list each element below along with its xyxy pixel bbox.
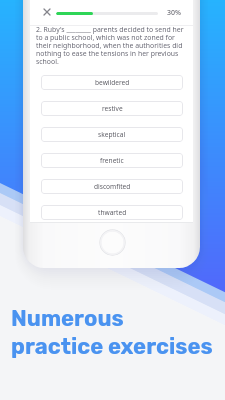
staticText: frenetic	[100, 156, 124, 165]
button[interactable]: bewildered	[41, 75, 183, 90]
staticText: bewildered	[95, 78, 130, 87]
button[interactable]: frenetic	[41, 153, 183, 168]
button[interactable]: Close	[38, 3, 55, 20]
staticText: restive	[102, 104, 123, 113]
staticText: 30%	[167, 8, 181, 18]
staticText: Numerous	[11, 305, 124, 331]
staticText: practice exercises	[11, 333, 213, 359]
staticText: discomfited	[94, 182, 131, 191]
button[interactable]: thwarted	[41, 205, 183, 220]
staticText: 2. Ruby's ________ parents decided to se…	[36, 25, 186, 66]
staticText: skeptical	[98, 130, 126, 139]
button[interactable]: restive	[41, 101, 183, 116]
button[interactable]: skeptical	[41, 127, 183, 142]
staticText: thwarted	[98, 208, 127, 217]
button[interactable]: discomfited	[41, 179, 183, 194]
